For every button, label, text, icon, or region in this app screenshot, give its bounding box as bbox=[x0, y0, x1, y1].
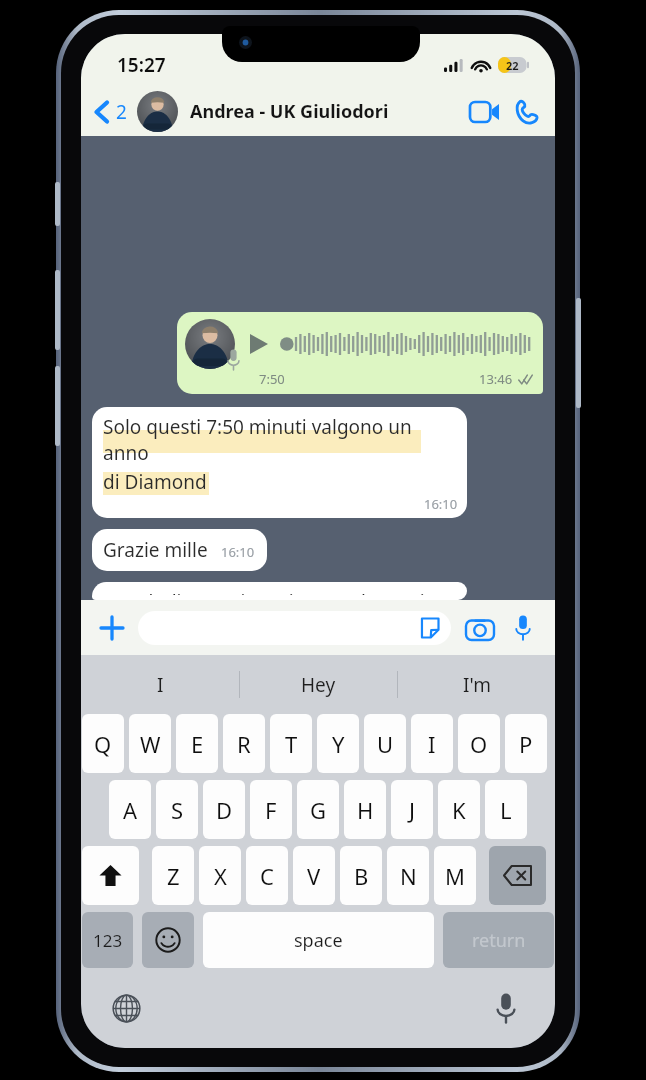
button[interactable]: S bbox=[156, 780, 198, 839]
button[interactable]: H bbox=[344, 780, 386, 839]
button[interactable]: K bbox=[438, 780, 480, 839]
button[interactable]: Back, 2 unread bbox=[89, 93, 133, 131]
button[interactable]: Shift bbox=[82, 846, 139, 905]
staticText: 15:27 bbox=[117, 52, 166, 78]
button[interactable]: C bbox=[246, 846, 288, 905]
button[interactable]: T bbox=[270, 714, 312, 773]
staticText: 2 bbox=[116, 99, 127, 125]
button[interactable]: Backspace bbox=[489, 846, 546, 905]
staticText: return bbox=[472, 928, 526, 953]
staticText: R bbox=[237, 729, 251, 759]
button[interactable]: R bbox=[223, 714, 265, 773]
staticText: M bbox=[445, 861, 465, 891]
staticText: S bbox=[171, 795, 184, 825]
button[interactable]: N bbox=[387, 846, 429, 905]
staticText: Q bbox=[94, 729, 112, 759]
button[interactable]: Metabolizzo e ci sentiamo nel prossimo bbox=[92, 582, 467, 600]
staticText: D bbox=[216, 795, 233, 825]
staticText: L bbox=[500, 795, 512, 825]
button[interactable]: I bbox=[81, 655, 239, 714]
button[interactable]: Emoji bbox=[142, 912, 194, 968]
staticText: J bbox=[409, 795, 416, 825]
button[interactable] bbox=[138, 611, 451, 645]
staticText: Z bbox=[167, 861, 180, 891]
button[interactable]: M bbox=[434, 846, 476, 905]
staticText: H bbox=[357, 795, 374, 825]
button[interactable]: 7:50 bbox=[177, 312, 543, 394]
staticText: P bbox=[519, 729, 533, 759]
staticText: U bbox=[377, 729, 394, 759]
button[interactable]: Solo questi 7:50 minuti valgono un anno bbox=[92, 407, 467, 518]
staticText: E bbox=[191, 729, 204, 759]
staticText: C bbox=[260, 861, 274, 891]
staticText: W bbox=[140, 729, 161, 759]
staticText: G bbox=[310, 795, 327, 825]
button[interactable]: Y bbox=[317, 714, 359, 773]
button[interactable]: W bbox=[129, 714, 171, 773]
staticText: B bbox=[354, 861, 369, 891]
staticText: N bbox=[400, 861, 417, 891]
staticText: T bbox=[285, 729, 298, 759]
button[interactable]: return bbox=[443, 912, 554, 968]
button[interactable]: L bbox=[485, 780, 527, 839]
staticText: I bbox=[157, 672, 164, 698]
button[interactable]: Attach bbox=[95, 611, 129, 645]
staticText: 22 bbox=[506, 58, 519, 73]
button[interactable]: A bbox=[109, 780, 151, 839]
button[interactable]: 123 bbox=[82, 912, 133, 968]
button[interactable]: P bbox=[505, 714, 547, 773]
button[interactable]: Change keyboard bbox=[104, 986, 148, 1030]
button[interactable]: Z bbox=[152, 846, 194, 905]
staticText: V bbox=[307, 861, 321, 891]
button[interactable]: V bbox=[293, 846, 335, 905]
staticText: O bbox=[470, 729, 488, 759]
button[interactable]: I'm bbox=[398, 655, 555, 714]
staticText: Andrea - UK Giuliodori bbox=[190, 99, 463, 124]
button[interactable]: O bbox=[458, 714, 500, 773]
button[interactable]: Video call bbox=[463, 91, 505, 133]
staticText: 7:50 bbox=[259, 370, 285, 388]
staticText: di Diamond bbox=[103, 469, 207, 495]
staticText: space bbox=[294, 928, 343, 953]
button[interactable]: X bbox=[199, 846, 241, 905]
staticText: Hey bbox=[301, 672, 336, 698]
button[interactable]: Contact photo bbox=[137, 91, 178, 132]
button[interactable]: E bbox=[176, 714, 218, 773]
staticText: K bbox=[452, 795, 466, 825]
button[interactable]: G bbox=[297, 780, 339, 839]
staticText: I'm bbox=[463, 672, 491, 698]
staticText: A bbox=[123, 795, 138, 825]
button[interactable]: Q bbox=[82, 714, 124, 773]
staticText: X bbox=[214, 861, 227, 891]
button[interactable]: B bbox=[340, 846, 382, 905]
staticText: Y bbox=[332, 729, 345, 759]
button[interactable]: space bbox=[203, 912, 434, 968]
button[interactable]: Audio call bbox=[505, 91, 547, 133]
button[interactable]: Camera bbox=[462, 610, 498, 646]
staticText: 123 bbox=[93, 929, 123, 952]
button[interactable]: Dictate bbox=[484, 986, 528, 1030]
button[interactable]: I bbox=[411, 714, 453, 773]
button[interactable]: J bbox=[391, 780, 433, 839]
button[interactable]: Voice message bbox=[505, 610, 541, 646]
button[interactable]: U bbox=[364, 714, 406, 773]
button[interactable]: F bbox=[250, 780, 292, 839]
staticText: 13:46 bbox=[479, 370, 513, 388]
staticText: 16:10 bbox=[221, 543, 255, 561]
staticText: Solo questi 7:50 minuti valgono un anno bbox=[103, 414, 458, 466]
button[interactable]: Hey bbox=[240, 655, 397, 714]
staticText: F bbox=[265, 795, 277, 825]
button[interactable]: D bbox=[203, 780, 245, 839]
staticText: 16:10 bbox=[424, 495, 458, 513]
button[interactable]: Grazie mille bbox=[92, 529, 267, 571]
staticText: Metabolizzo e ci sentiamo nel prossimo bbox=[103, 589, 454, 595]
staticText: I bbox=[428, 729, 436, 759]
staticText: Grazie mille bbox=[103, 537, 208, 563]
